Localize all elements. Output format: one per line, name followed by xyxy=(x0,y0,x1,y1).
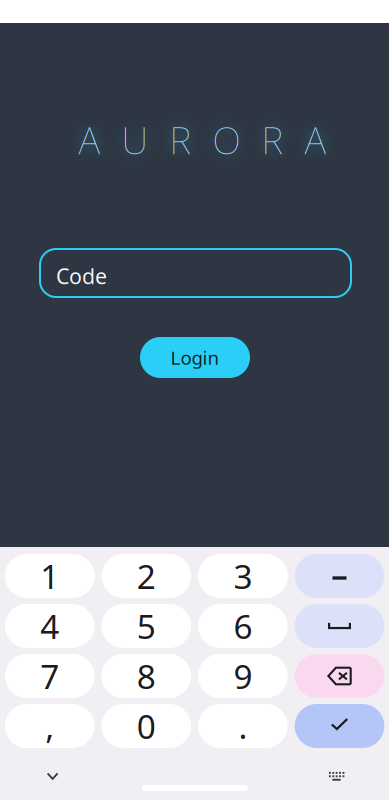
button[interactable]: Code xyxy=(40,249,351,297)
button[interactable]: 6 xyxy=(198,604,288,648)
staticText: 4 xyxy=(40,604,59,648)
button[interactable]: 0 xyxy=(101,704,191,748)
button[interactable]: 4 xyxy=(5,604,94,648)
button[interactable]: Switch keyboard xyxy=(315,758,358,795)
button[interactable]: Hide keyboard xyxy=(34,759,72,793)
button[interactable]: Login xyxy=(140,337,250,378)
staticText: 6 xyxy=(233,604,252,648)
staticText: 8 xyxy=(137,654,156,698)
button[interactable]: 3 xyxy=(198,554,288,598)
staticText: 9 xyxy=(233,654,252,698)
staticText: Login xyxy=(170,345,219,370)
staticText: 5 xyxy=(137,604,156,648)
button[interactable]: 1 xyxy=(5,554,94,598)
button[interactable]: Enter xyxy=(295,704,384,748)
button[interactable]: Minus xyxy=(295,554,384,598)
button[interactable]: 8 xyxy=(101,654,191,698)
staticText: 3 xyxy=(233,554,252,598)
staticText: 1 xyxy=(40,554,59,598)
staticText: 2 xyxy=(137,554,156,598)
button[interactable]: 7 xyxy=(5,654,94,698)
staticText: , xyxy=(45,704,54,748)
staticText: AURORA xyxy=(78,115,326,165)
button[interactable]: , xyxy=(5,704,94,748)
button[interactable]: . xyxy=(198,704,288,748)
staticText: Code xyxy=(56,262,107,290)
button[interactable]: Backspace xyxy=(295,654,384,698)
button[interactable]: 9 xyxy=(198,654,288,698)
staticText: . xyxy=(238,704,247,748)
button[interactable]: 5 xyxy=(101,604,191,648)
staticText: 0 xyxy=(137,704,156,748)
button[interactable]: Space xyxy=(295,604,384,648)
staticText: 7 xyxy=(40,654,59,698)
button[interactable]: 2 xyxy=(101,554,191,598)
